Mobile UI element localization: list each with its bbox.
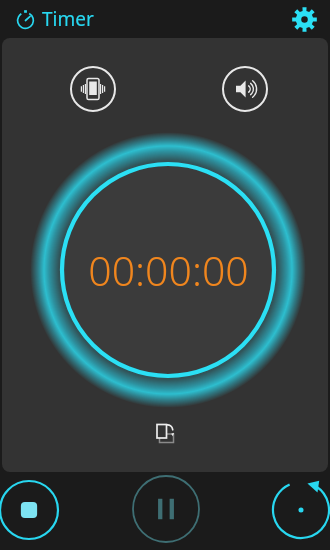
button[interactable]: Sound (220, 64, 270, 114)
button[interactable]: Vibrate (68, 64, 118, 114)
button[interactable]: Timer dial (28, 130, 308, 410)
button[interactable]: Stop (0, 477, 62, 543)
button[interactable]: Rotate screen (146, 414, 186, 454)
staticText: Timer (42, 6, 94, 32)
button[interactable]: Settings (282, 0, 326, 38)
staticText: 00:00:00 (88, 242, 249, 298)
button[interactable]: Pause (129, 472, 203, 546)
button[interactable]: Reset (268, 477, 330, 543)
